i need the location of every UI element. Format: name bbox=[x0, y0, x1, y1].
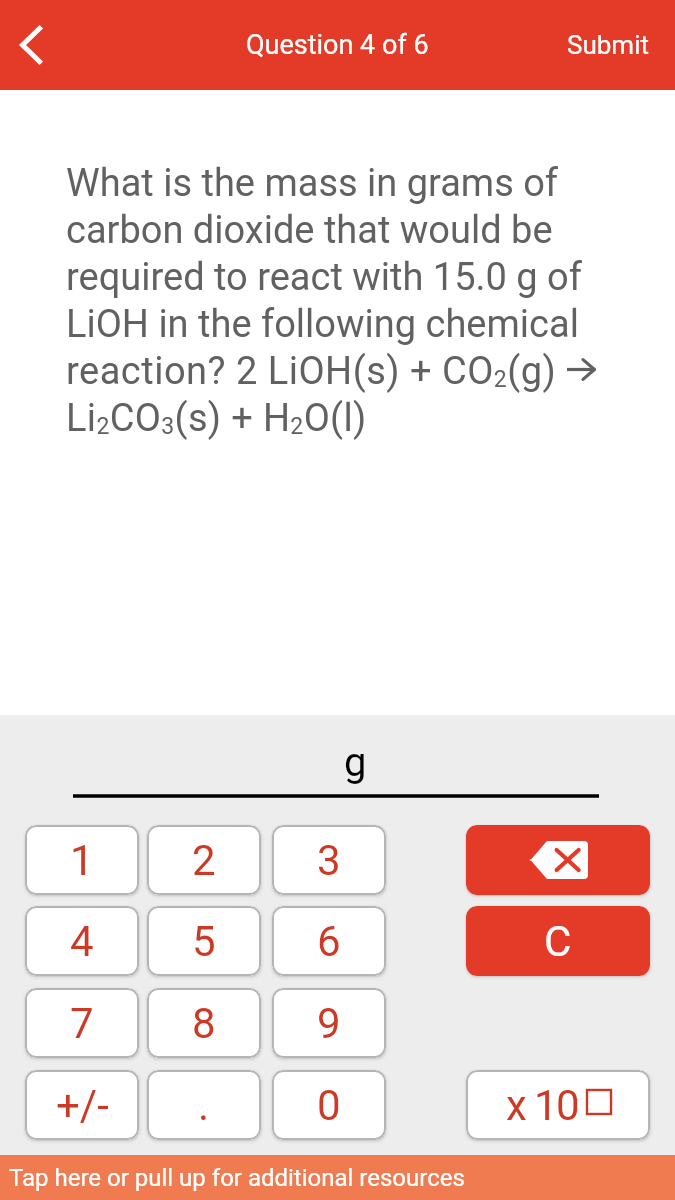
button[interactable]: 1 bbox=[25, 825, 139, 895]
staticText: 0 bbox=[317, 1081, 341, 1130]
button[interactable]: 6 bbox=[272, 906, 386, 976]
button[interactable]: 3 bbox=[272, 825, 386, 895]
button[interactable]: x 10 bbox=[466, 1070, 650, 1140]
staticText: 3 bbox=[317, 836, 341, 885]
staticText: What is the mass in grams of bbox=[66, 161, 559, 206]
button[interactable]: 8 bbox=[147, 988, 261, 1058]
button[interactable]: 4 bbox=[25, 906, 139, 976]
staticText: 1 bbox=[70, 836, 94, 885]
staticText: Tap here or pull up for additional resou… bbox=[9, 1164, 465, 1192]
staticText: Submit bbox=[567, 30, 649, 60]
staticText: 9 bbox=[317, 999, 341, 1048]
staticText: carbon dioxide that would be bbox=[66, 208, 553, 253]
staticText: 5 bbox=[192, 917, 216, 966]
staticText: C bbox=[544, 917, 572, 966]
staticText: . bbox=[198, 1081, 210, 1130]
button[interactable]: Backspace bbox=[466, 825, 650, 895]
staticText: 4 bbox=[70, 917, 94, 966]
staticText: +/- bbox=[56, 1081, 109, 1130]
staticText: x 10 bbox=[506, 1081, 579, 1130]
staticText: g bbox=[344, 739, 367, 786]
staticText: 8 bbox=[192, 999, 216, 1048]
button[interactable]: 0 bbox=[272, 1070, 386, 1140]
button[interactable]: 7 bbox=[25, 988, 139, 1058]
button[interactable]: 9 bbox=[272, 988, 386, 1058]
button[interactable]: Submit bbox=[541, 16, 675, 74]
staticText: required to react with 15.0 g of bbox=[66, 255, 582, 300]
staticText: reaction? 2 LiOH(s) + CO2(g) bbox=[66, 349, 567, 394]
button[interactable]: 2 bbox=[147, 825, 261, 895]
staticText: 6 bbox=[317, 917, 341, 966]
staticText: 7 bbox=[70, 999, 94, 1048]
button[interactable]: 5 bbox=[147, 906, 261, 976]
button[interactable]: +/- bbox=[25, 1070, 139, 1140]
staticText: Li2CO3(s) + H2O(l) bbox=[66, 396, 367, 441]
button[interactable]: . bbox=[147, 1070, 261, 1140]
button[interactable]: Clear bbox=[466, 906, 650, 976]
staticText: 2 bbox=[192, 836, 216, 885]
button[interactable]: Tap here or pull up for additional resou… bbox=[0, 1155, 675, 1200]
staticText: LiOH in the following chemical bbox=[66, 302, 579, 347]
button[interactable]: Back bbox=[2, 10, 60, 80]
staticText: Question 4 of 6 bbox=[246, 29, 429, 61]
